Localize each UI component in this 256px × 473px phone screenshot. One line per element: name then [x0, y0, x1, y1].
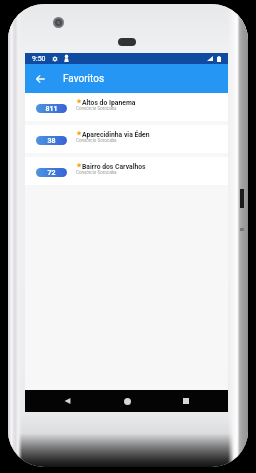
staticText: Aparecidinha via Éden: [82, 131, 150, 139]
button[interactable]: Back: [28, 67, 52, 91]
button[interactable]: 38: [25, 125, 228, 153]
staticText: Bairro dos Carvalhos: [82, 163, 146, 171]
button[interactable]: Back: [49, 390, 85, 412]
staticText: 38: [47, 137, 56, 145]
button[interactable]: 72: [25, 157, 228, 185]
staticText: Altos do Ipanema: [82, 99, 136, 107]
button[interactable]: Recents: [168, 390, 204, 412]
button[interactable]: Home: [109, 390, 145, 412]
staticText: Favoritos: [63, 73, 105, 85]
staticText: Consórcio Sorocaba: [76, 170, 117, 175]
staticText: Consórcio Sorocaba: [76, 106, 117, 111]
staticText: 9:50: [32, 55, 46, 63]
staticText: 811: [45, 105, 58, 113]
staticText: Consórcio Sorocaba: [76, 138, 117, 143]
button[interactable]: 811: [25, 93, 228, 121]
staticText: 72: [47, 169, 56, 177]
